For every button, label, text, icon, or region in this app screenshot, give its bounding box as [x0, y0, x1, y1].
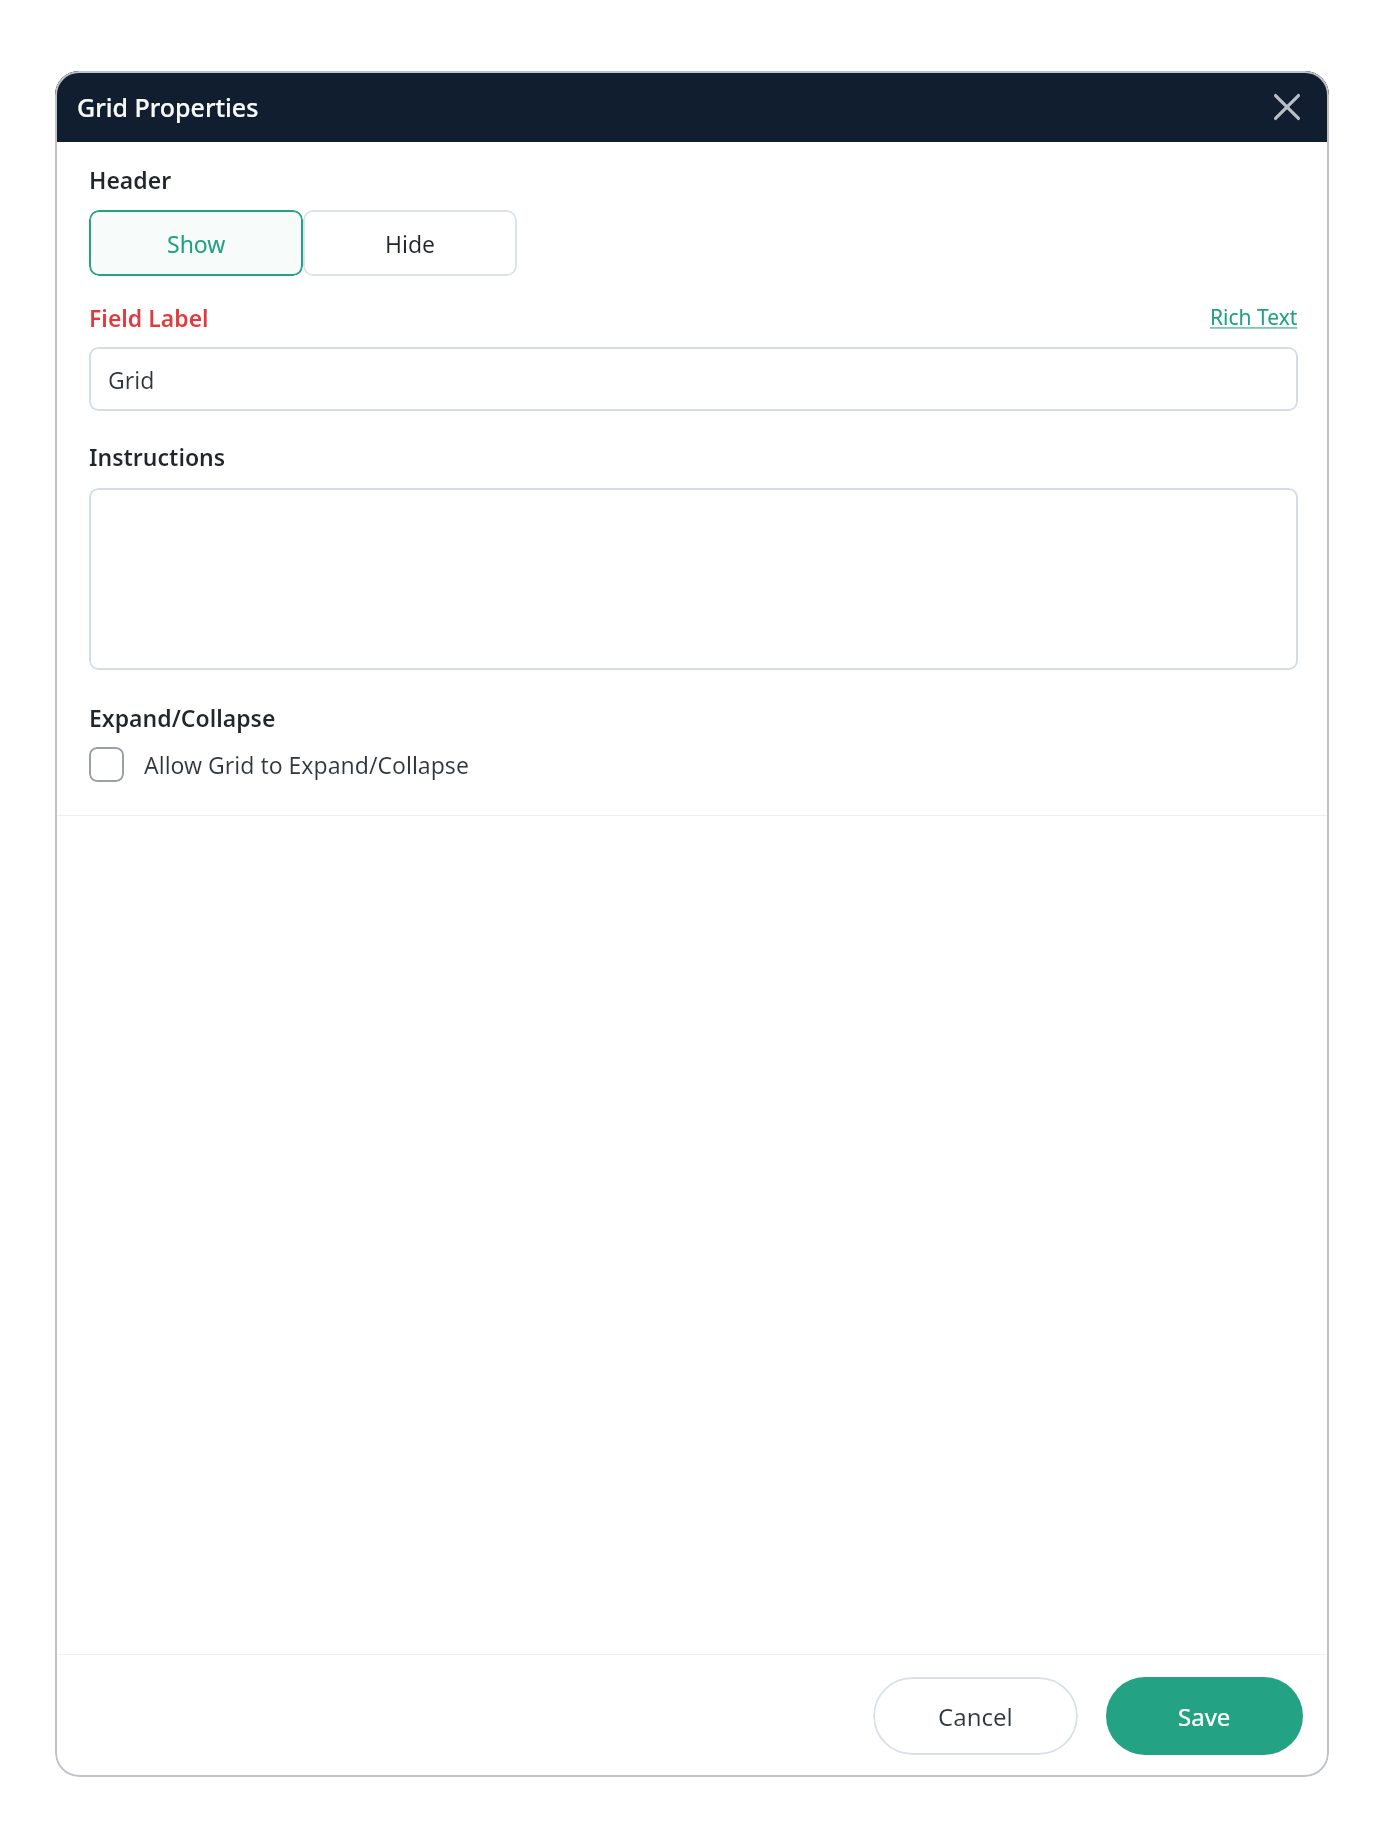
- staticText: Allow Grid to Expand/Collapse: [144, 749, 469, 780]
- staticText: Expand/Collapse: [89, 702, 276, 733]
- button[interactable]: Save: [1106, 1677, 1303, 1755]
- staticText: Save: [1178, 1700, 1231, 1733]
- staticText: Rich Text: [1210, 303, 1298, 332]
- staticText: Cancel: [938, 1700, 1013, 1733]
- button[interactable]: Grid: [89, 347, 1298, 411]
- button[interactable]: Close: [1265, 85, 1309, 129]
- staticText: Hide: [385, 228, 436, 259]
- button[interactable]: Cancel: [873, 1677, 1078, 1755]
- staticText: Show: [167, 228, 226, 259]
- button[interactable]: Rich Text: [1210, 303, 1298, 332]
- staticText: Field Label: [89, 302, 209, 333]
- button[interactable]: [89, 488, 1298, 670]
- button[interactable]: Show: [89, 210, 303, 276]
- button[interactable]: Hide: [303, 210, 517, 276]
- staticText: Instructions: [89, 441, 226, 472]
- staticText: Grid: [108, 364, 155, 395]
- staticText: Grid Properties: [77, 90, 259, 124]
- button[interactable]: Allow Grid to Expand/Collapse: [89, 747, 469, 782]
- staticText: Header: [89, 164, 172, 195]
